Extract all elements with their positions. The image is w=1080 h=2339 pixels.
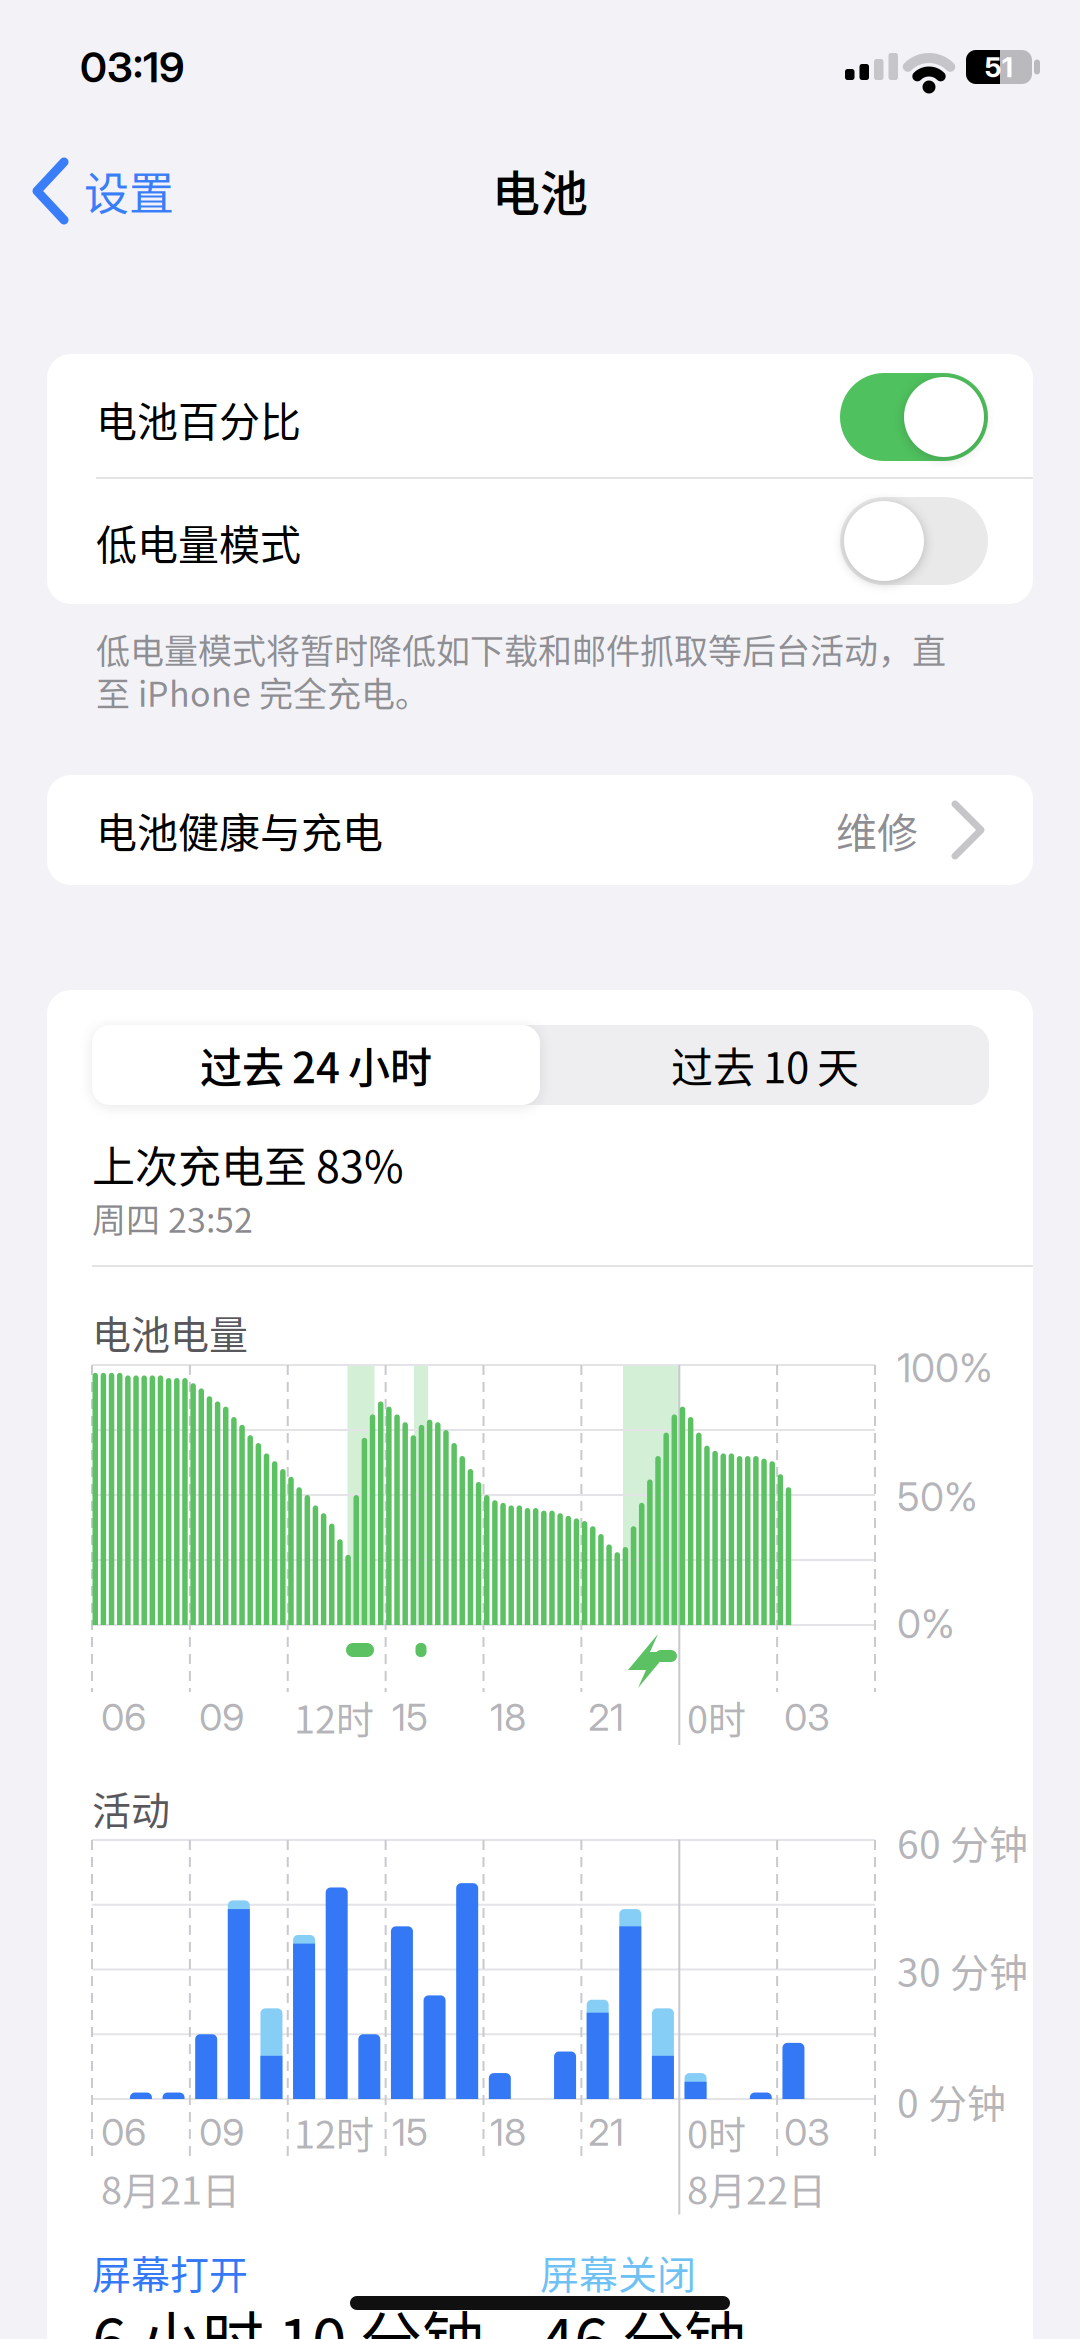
staticText: 电池电量 — [92, 1304, 248, 1360]
staticText: 18 — [490, 1694, 526, 1740]
staticText: 12时 — [294, 2104, 374, 2159]
staticText: 低电量模式 — [96, 512, 301, 572]
staticText: 电池健康与充电 — [96, 800, 383, 860]
staticText: 09 — [199, 1694, 244, 1740]
staticText: 维修 — [836, 800, 918, 860]
button[interactable]: 过去 24 小时 — [92, 1025, 540, 1105]
staticText: 03 — [784, 1694, 830, 1740]
staticText: 09 — [199, 2109, 244, 2155]
staticText: 15 — [392, 1694, 428, 1740]
staticText: 8月22日 — [687, 2160, 826, 2215]
staticText: 8月21日 — [101, 2160, 240, 2215]
staticText: 活动 — [92, 1780, 170, 1836]
staticText: 21 — [588, 1694, 624, 1740]
staticText: 过去 10 天 — [671, 1035, 859, 1095]
button[interactable]: 返回设置 — [30, 154, 270, 228]
staticText: 屏幕打开 — [92, 2244, 248, 2300]
staticText: 21 — [588, 2109, 624, 2155]
staticText: 30 分钟 — [897, 1942, 1028, 1998]
button[interactable]: 低电量模式 — [840, 497, 988, 585]
staticText: 至 iPhone 完全充电。 — [96, 667, 429, 717]
staticText: 06 — [101, 1694, 146, 1740]
staticText: 51 — [984, 50, 1013, 84]
staticText: 50% — [897, 1473, 978, 1521]
staticText: 60 分钟 — [897, 1814, 1028, 1870]
staticText: 0时 — [687, 2104, 746, 2159]
staticText: 06 — [101, 2109, 146, 2155]
staticText: 周四 23:52 — [92, 1193, 253, 1243]
button[interactable]: 过去 10 天 — [541, 1025, 989, 1105]
staticText: 15 — [392, 2109, 428, 2155]
staticText: 设置 — [84, 158, 174, 224]
staticText: 过去 24 小时 — [200, 1035, 432, 1095]
staticText: 6 小时 10 分钟 — [92, 2292, 484, 2339]
staticText: 电池百分比 — [96, 389, 301, 449]
staticText: 上次充电至 83% — [92, 1133, 404, 1195]
staticText: 电池 — [492, 155, 588, 225]
button[interactable]: 电池百分比 — [840, 373, 988, 461]
staticText: 低电量模式将暂时降低如下载和邮件抓取等后台活动，直 — [96, 624, 946, 674]
staticText: 0 分钟 — [897, 2073, 1006, 2129]
staticText: 100% — [897, 1344, 993, 1392]
staticText: 0时 — [687, 1689, 746, 1744]
staticText: 12时 — [294, 1689, 374, 1744]
staticText: 18 — [490, 2109, 526, 2155]
button[interactable]: 电池健康与充电 — [47, 775, 1033, 885]
staticText: 0% — [897, 1600, 955, 1648]
staticText: 03 — [784, 2109, 830, 2155]
staticText: 屏幕关闭 — [540, 2244, 696, 2300]
staticText: 03:19 — [80, 42, 184, 92]
staticText: 46 分钟 — [540, 2292, 746, 2339]
